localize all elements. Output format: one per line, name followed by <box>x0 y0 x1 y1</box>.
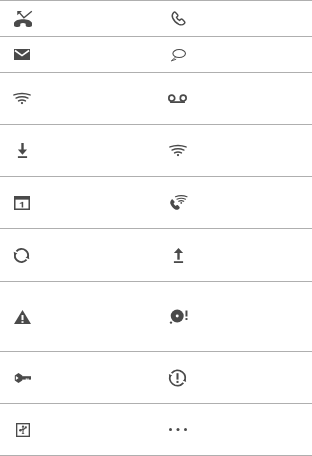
button[interactable]: Email <box>0 37 156 72</box>
button[interactable]: Wi-Fi <box>0 73 156 124</box>
button[interactable]: Call <box>156 1 312 36</box>
button[interactable]: Disc full <box>156 282 312 351</box>
button[interactable]: Voicemail <box>156 73 312 124</box>
button[interactable]: Upload <box>156 229 312 281</box>
button[interactable]: Calendar <box>0 177 156 228</box>
button[interactable]: Warning <box>0 282 156 351</box>
button[interactable]: Sync <box>0 229 156 281</box>
button[interactable]: Download <box>0 125 156 176</box>
button[interactable]: Chat <box>156 37 312 72</box>
button[interactable]: VPN key <box>0 352 156 403</box>
button[interactable]: More <box>156 404 312 455</box>
button[interactable]: Wi-Fi calling <box>156 177 312 228</box>
button[interactable]: Missed call <box>0 1 156 36</box>
button[interactable]: Wi-Fi <box>156 125 312 176</box>
button[interactable]: USB <box>0 404 156 455</box>
button[interactable]: Sync problem <box>156 352 312 403</box>
